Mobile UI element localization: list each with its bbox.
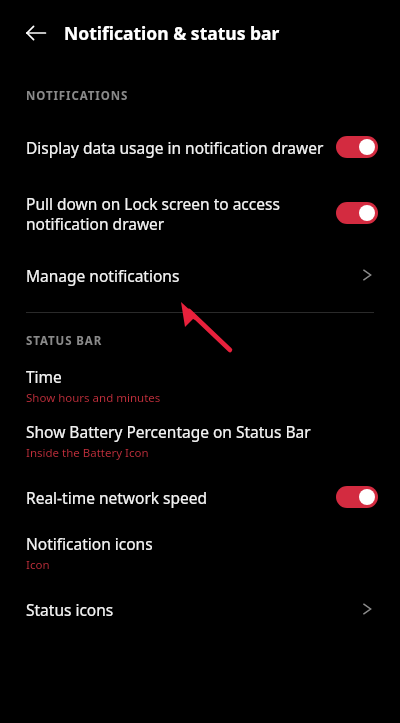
staticText: Show hours and minutes <box>26 390 161 406</box>
staticText: NOTIFICATIONS <box>26 88 129 104</box>
staticText: Pull down on Lock screen to access notif… <box>26 193 324 234</box>
staticText: Icon <box>26 557 50 573</box>
staticText: Manage notifications <box>26 265 180 286</box>
staticText: Display data usage in notification drawe… <box>26 137 324 158</box>
button[interactable]: Back <box>18 15 54 51</box>
button[interactable]: Pull down on Lock screen to access notif… <box>0 178 400 248</box>
staticText: Inside the Battery Icon <box>26 445 149 461</box>
button[interactable]: Real-time network speed <box>0 469 400 525</box>
button[interactable]: Time <box>0 359 400 413</box>
button[interactable]: Notification icons <box>0 525 400 581</box>
staticText: Time <box>26 366 62 387</box>
staticText: Show Battery Percentage on Status Bar <box>26 421 311 442</box>
staticText: STATUS BAR <box>26 333 103 349</box>
staticText: Notification icons <box>26 533 153 554</box>
staticText: Status icons <box>26 599 114 620</box>
button[interactable]: Display data usage in notification drawe… <box>0 116 400 178</box>
other: Open <box>358 599 378 619</box>
staticText: Real-time network speed <box>26 487 208 508</box>
staticText: Notification & status bar <box>64 21 280 45</box>
button[interactable]: Manage notifications <box>0 248 400 302</box>
button[interactable]: Status icons <box>0 581 400 637</box>
other: Open <box>358 265 378 285</box>
button[interactable]: Show Battery Percentage on Status Bar <box>0 413 400 469</box>
